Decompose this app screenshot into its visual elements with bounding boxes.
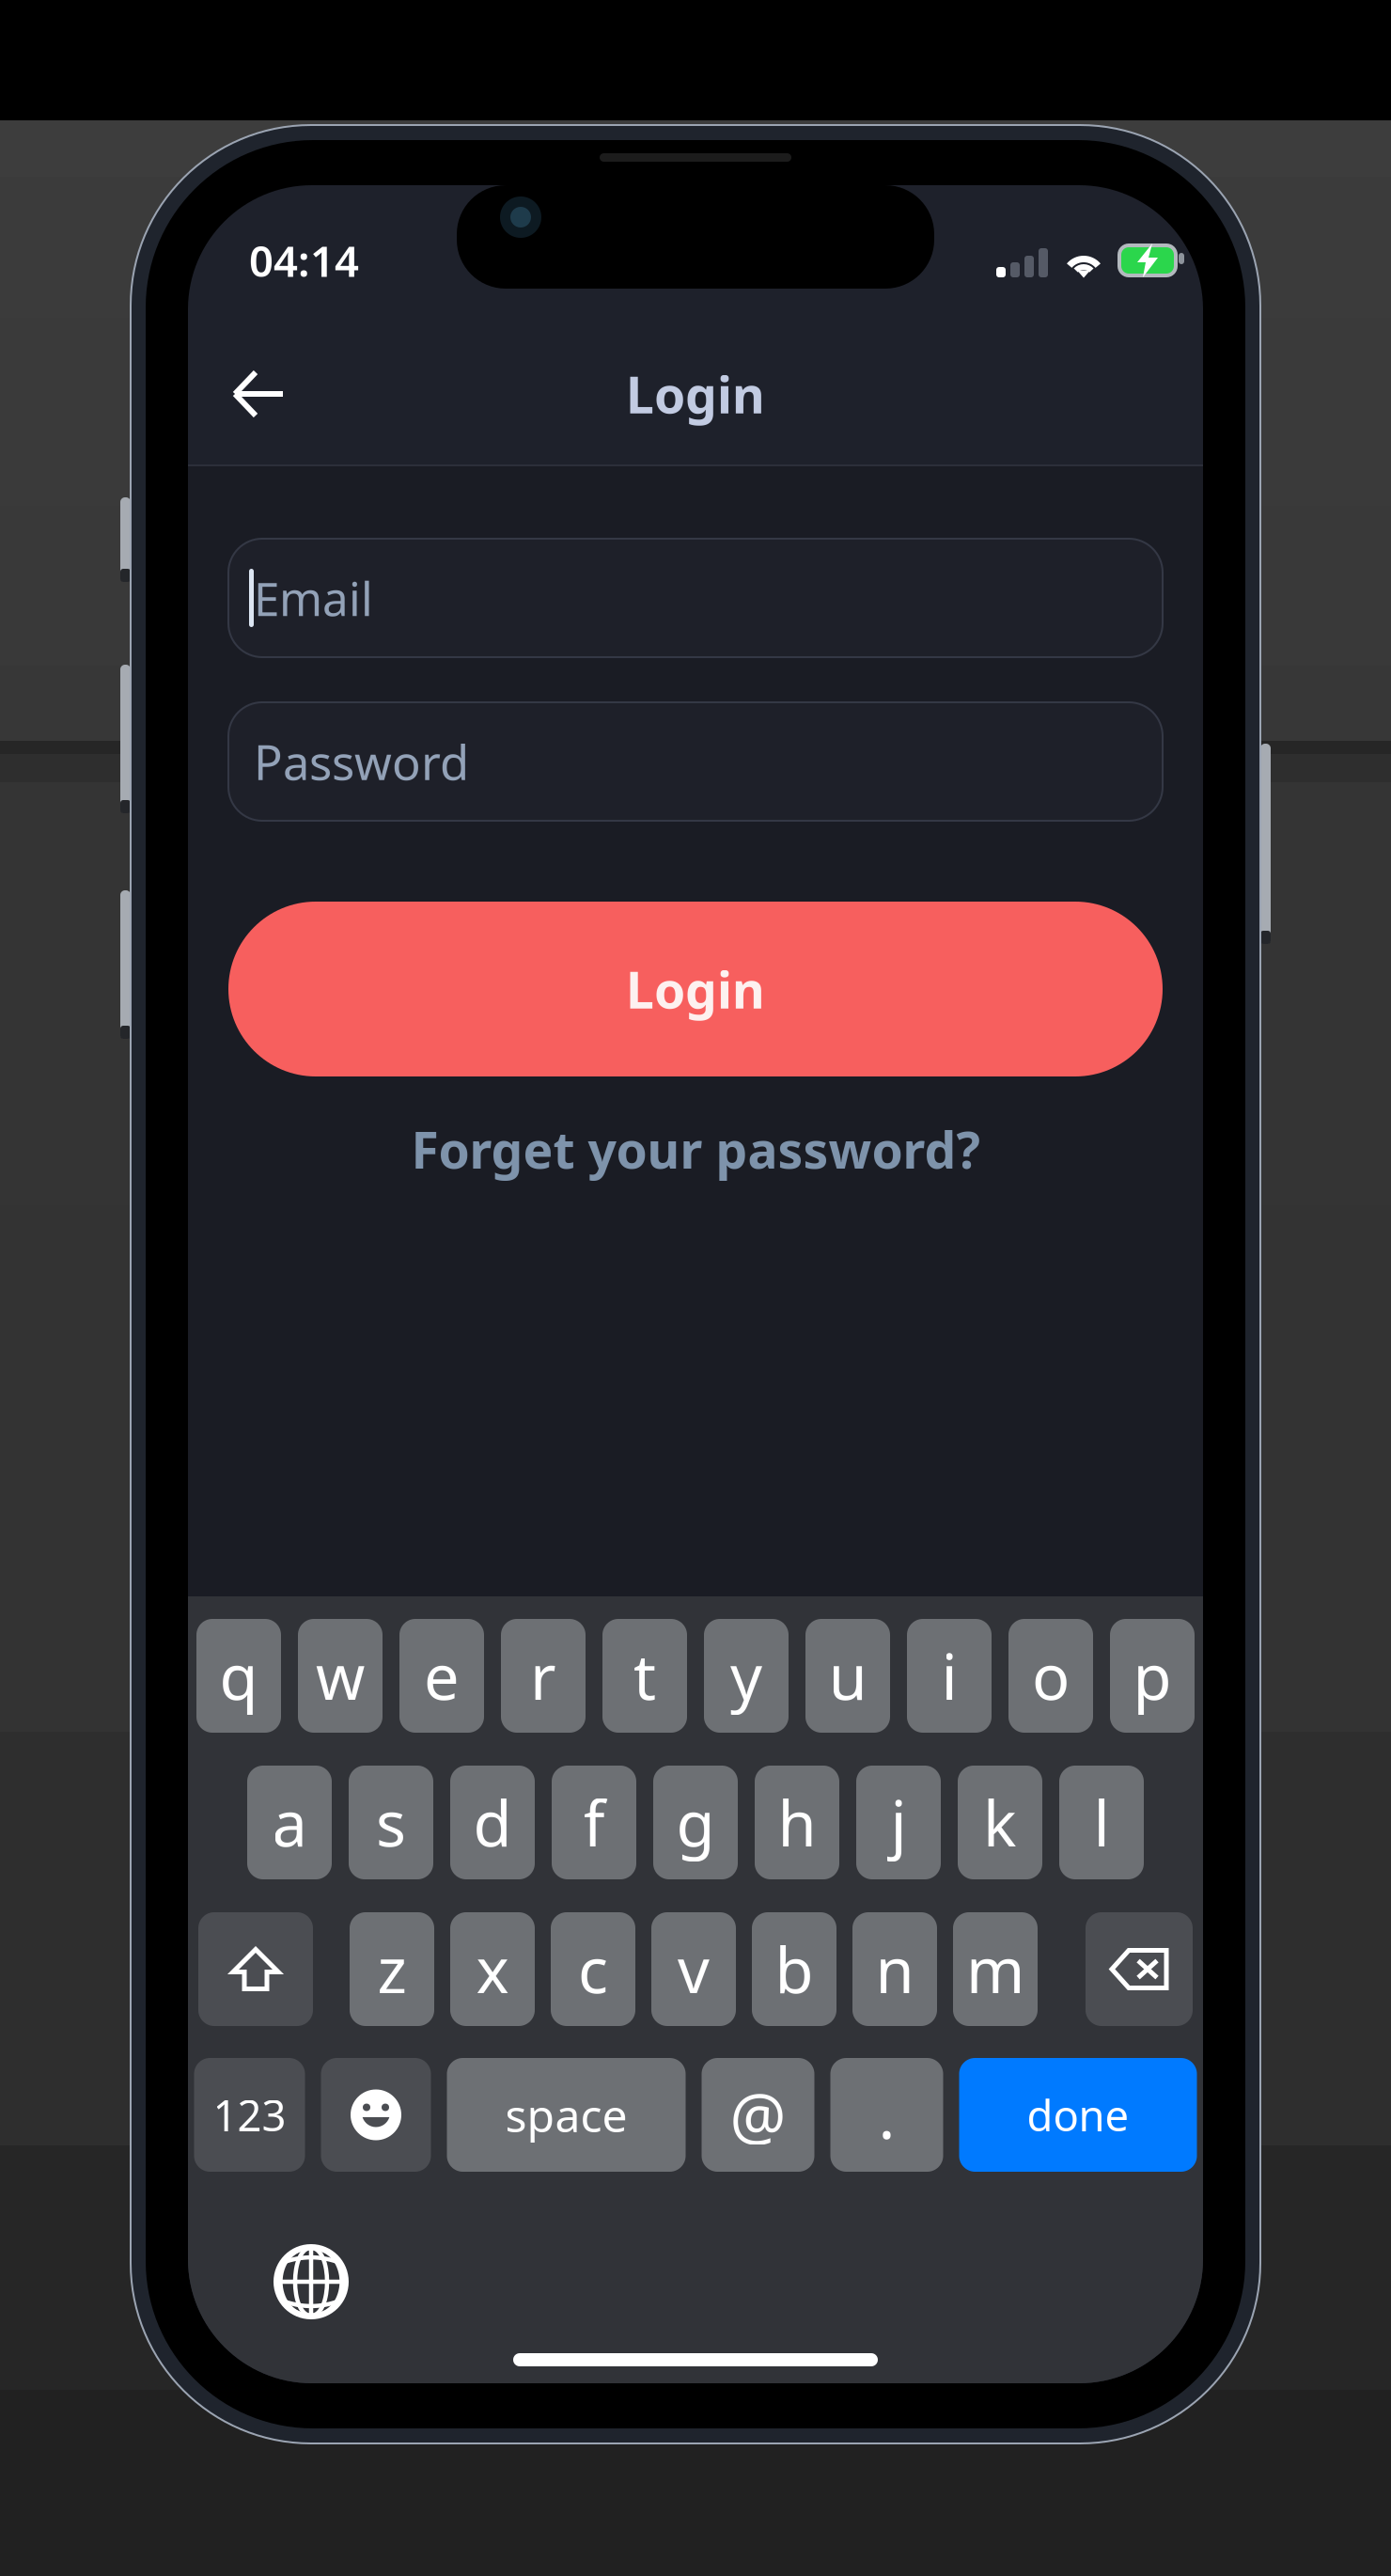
staticText: s bbox=[376, 1781, 406, 1864]
button[interactable]: d bbox=[450, 1766, 535, 1879]
button[interactable]: y bbox=[704, 1619, 789, 1733]
staticText: n bbox=[875, 1927, 914, 2011]
staticText: t bbox=[633, 1634, 656, 1717]
staticText: j bbox=[891, 1781, 906, 1864]
staticText: x bbox=[476, 1927, 509, 2011]
staticText: done bbox=[1027, 2087, 1129, 2143]
staticText: d bbox=[473, 1781, 512, 1864]
button[interactable]: p bbox=[1110, 1619, 1195, 1733]
staticText: space bbox=[505, 2085, 627, 2145]
button[interactable]: t bbox=[602, 1619, 687, 1733]
button[interactable]: i bbox=[907, 1619, 992, 1733]
button[interactable]: 123 bbox=[194, 2058, 305, 2172]
button[interactable]: u bbox=[805, 1619, 890, 1733]
button[interactable]: b bbox=[752, 1912, 836, 2026]
button[interactable]: @ bbox=[702, 2058, 814, 2172]
staticText: m bbox=[966, 1927, 1024, 2011]
staticText: . bbox=[878, 2073, 895, 2156]
staticText: Login bbox=[626, 361, 765, 427]
button[interactable]: x bbox=[450, 1912, 535, 2026]
button[interactable]: q bbox=[196, 1619, 281, 1733]
button[interactable]: o bbox=[1008, 1619, 1093, 1733]
button[interactable]: done bbox=[959, 2058, 1197, 2172]
button[interactable]: Emoji bbox=[321, 2058, 431, 2172]
staticText: a bbox=[272, 1781, 307, 1864]
button[interactable]: m bbox=[953, 1912, 1038, 2026]
button[interactable]: w bbox=[298, 1619, 383, 1733]
button[interactable]: Password bbox=[228, 702, 1163, 821]
button[interactable]: . bbox=[830, 2058, 943, 2172]
staticText: g bbox=[676, 1781, 715, 1864]
staticText: c bbox=[578, 1927, 608, 2011]
button[interactable]: k bbox=[958, 1766, 1042, 1879]
staticText: 123 bbox=[213, 2087, 286, 2143]
button[interactable]: s bbox=[349, 1766, 433, 1879]
staticText: Password bbox=[254, 730, 469, 793]
button[interactable]: Shift bbox=[198, 1912, 313, 2026]
button[interactable]: r bbox=[501, 1619, 586, 1733]
button[interactable]: n bbox=[852, 1912, 937, 2026]
staticText: o bbox=[1032, 1634, 1070, 1717]
staticText: @ bbox=[730, 2073, 786, 2156]
staticText: Forget your password? bbox=[411, 1116, 980, 1183]
staticText: h bbox=[778, 1781, 816, 1864]
staticText: f bbox=[583, 1781, 605, 1864]
staticText: z bbox=[377, 1927, 406, 2011]
button[interactable]: v bbox=[651, 1912, 736, 2026]
button[interactable]: Delete bbox=[1086, 1912, 1193, 2026]
button[interactable]: space bbox=[447, 2058, 686, 2172]
button[interactable]: f bbox=[552, 1766, 636, 1879]
staticText: w bbox=[316, 1634, 365, 1717]
staticText: v bbox=[678, 1927, 710, 2011]
staticText: k bbox=[983, 1781, 1017, 1864]
button[interactable]: Login bbox=[228, 902, 1163, 1076]
staticText: b bbox=[775, 1927, 813, 2011]
button[interactable]: g bbox=[653, 1766, 738, 1879]
button[interactable]: l bbox=[1059, 1766, 1144, 1879]
staticText: Email bbox=[254, 567, 373, 629]
staticText: 04:14 bbox=[249, 232, 359, 289]
button[interactable]: z bbox=[350, 1912, 434, 2026]
button[interactable]: Forget your password? bbox=[396, 1107, 995, 1192]
staticText: r bbox=[530, 1634, 556, 1717]
button[interactable]: a bbox=[247, 1766, 332, 1879]
staticText: e bbox=[424, 1634, 460, 1717]
staticText: Login bbox=[626, 956, 765, 1022]
staticText: u bbox=[828, 1634, 867, 1717]
staticText: p bbox=[1133, 1634, 1172, 1717]
staticText: q bbox=[219, 1634, 258, 1717]
staticText: i bbox=[941, 1634, 957, 1717]
button[interactable]: Switch keyboard bbox=[259, 2230, 363, 2333]
button[interactable]: h bbox=[755, 1766, 839, 1879]
button[interactable]: e bbox=[399, 1619, 484, 1733]
staticText: l bbox=[1094, 1781, 1110, 1864]
button[interactable]: Email bbox=[228, 539, 1163, 657]
staticText: y bbox=[730, 1634, 762, 1717]
button[interactable]: c bbox=[551, 1912, 635, 2026]
button[interactable]: j bbox=[856, 1766, 941, 1879]
button[interactable]: Back bbox=[211, 351, 305, 437]
